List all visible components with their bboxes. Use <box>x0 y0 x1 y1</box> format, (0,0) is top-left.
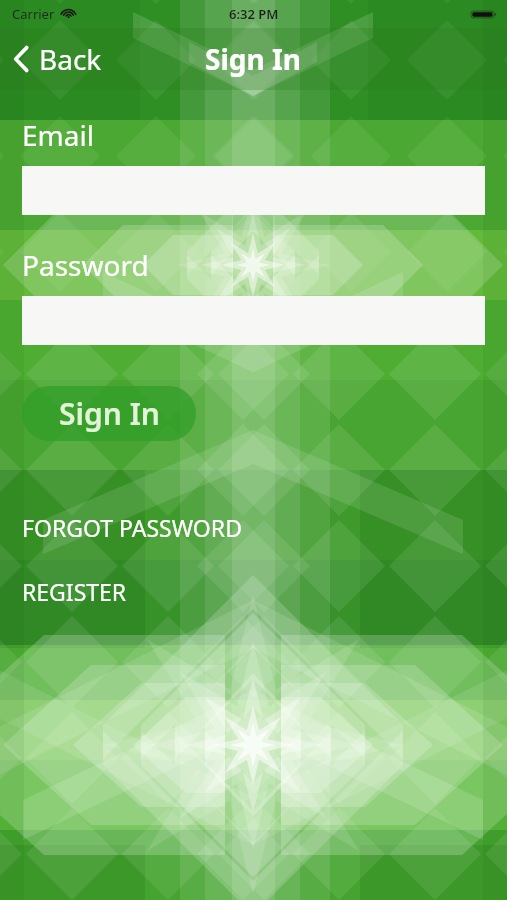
staticText: 6:32 PM <box>229 5 279 23</box>
button[interactable]: Sign In <box>22 386 196 441</box>
staticText: Carrier <box>12 5 55 23</box>
staticText: Sign In <box>205 40 302 78</box>
staticText: Back <box>39 40 102 78</box>
button[interactable]: FORGOT PASSWORD <box>22 512 242 543</box>
staticText: Password <box>22 246 149 284</box>
button[interactable]: Back <box>10 40 102 78</box>
staticText: Sign In <box>59 393 160 434</box>
button[interactable]: REGISTER <box>22 576 127 607</box>
staticText: REGISTER <box>22 576 127 607</box>
staticText: Email <box>22 116 94 154</box>
staticText: FORGOT PASSWORD <box>22 512 242 543</box>
